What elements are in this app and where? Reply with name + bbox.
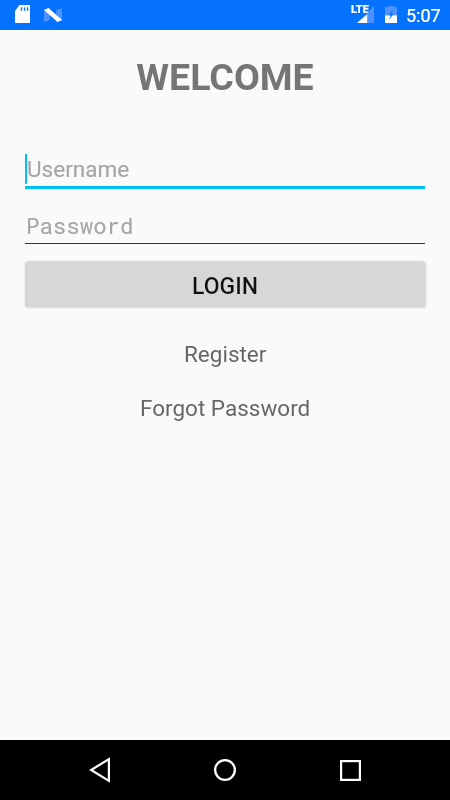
staticText: LOGIN bbox=[192, 273, 259, 300]
button[interactable]: Register bbox=[0, 338, 450, 369]
staticText: Username bbox=[27, 156, 130, 182]
staticText: Register bbox=[184, 341, 267, 367]
button[interactable]: Recent apps bbox=[320, 740, 380, 800]
staticText: LTE bbox=[351, 3, 369, 16]
button[interactable]: Forgot Password bbox=[0, 392, 450, 423]
staticText: Password bbox=[26, 211, 134, 241]
button[interactable]: Home bbox=[195, 740, 255, 800]
staticText: 5:07 bbox=[406, 5, 441, 26]
button[interactable]: Back bbox=[70, 740, 130, 800]
button[interactable]: LOGIN bbox=[25, 261, 425, 307]
staticText: Forgot Password bbox=[140, 395, 311, 421]
staticText: WELCOME bbox=[0, 55, 450, 99]
